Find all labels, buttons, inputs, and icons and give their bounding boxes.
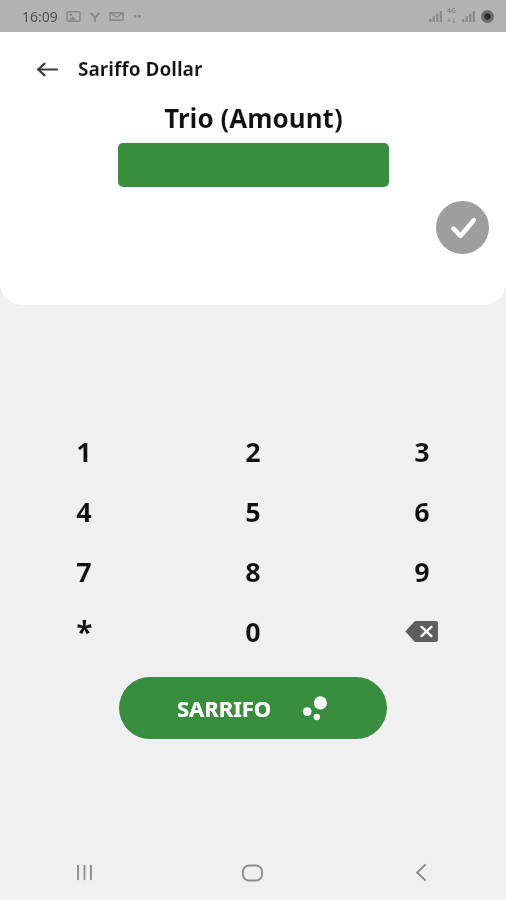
staticText: 6 [414, 493, 430, 530]
button[interactable]: Backspace [337, 601, 506, 661]
button[interactable]: 6 [337, 481, 506, 541]
button[interactable]: 5 [168, 481, 337, 541]
button[interactable]: Recent apps [0, 845, 168, 900]
staticText: 4 [76, 493, 92, 530]
button[interactable]: 9 [337, 541, 506, 601]
button[interactable]: 2 [168, 421, 337, 481]
button[interactable]: 0 [168, 601, 337, 661]
staticText: 16:09 [22, 7, 58, 26]
button[interactable]: Home [168, 845, 337, 900]
button[interactable]: 8 [168, 541, 337, 601]
button[interactable]: 1 [0, 421, 168, 481]
staticText: +↓ [447, 16, 457, 26]
button[interactable]: * [0, 601, 168, 661]
button[interactable]: Back [30, 52, 64, 86]
button[interactable]: 4 [0, 481, 168, 541]
staticText: SARRIFO [177, 693, 272, 723]
staticText: 3 [414, 433, 430, 470]
button[interactable] [118, 143, 389, 187]
staticText: 2 [245, 433, 261, 470]
staticText: 1 [76, 433, 92, 470]
button[interactable]: Confirm [436, 201, 489, 254]
staticText: Sariffo Dollar [78, 56, 203, 82]
staticText: 9 [414, 553, 430, 590]
staticText: Trio (Amount) [164, 100, 343, 135]
staticText: 8 [245, 553, 261, 590]
staticText: 7 [76, 553, 92, 590]
staticText: * [76, 611, 93, 652]
staticText: 0 [245, 613, 261, 650]
button[interactable]: 3 [337, 421, 506, 481]
button[interactable]: 7 [0, 541, 168, 601]
button[interactable]: SARRIFO [119, 677, 387, 739]
staticText: 4G [447, 6, 457, 16]
button[interactable]: Back [337, 845, 506, 900]
staticText: 5 [245, 493, 261, 530]
